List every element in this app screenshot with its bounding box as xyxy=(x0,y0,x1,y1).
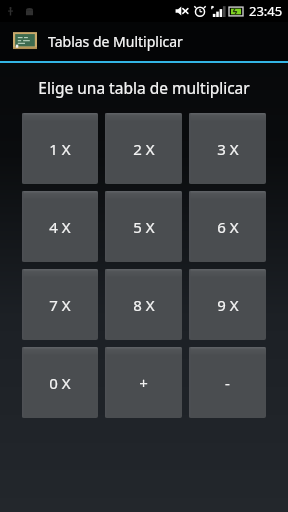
staticText: 0 X xyxy=(49,373,71,393)
staticText: 1 X xyxy=(49,139,71,159)
staticText: 8 X xyxy=(133,295,155,315)
button[interactable]: - xyxy=(189,347,266,418)
staticText: Elige una tabla de multiplicar xyxy=(0,77,288,98)
button[interactable]: 2 X xyxy=(105,113,182,184)
button[interactable]: + xyxy=(105,347,182,418)
staticText: 23:45 xyxy=(249,2,283,20)
staticText: 3 X xyxy=(217,139,239,159)
staticText: 2 X xyxy=(133,139,155,159)
staticText: Tablas de Multiplicar xyxy=(48,32,183,51)
button[interactable]: 7 X xyxy=(22,269,98,340)
staticText: 6 X xyxy=(217,217,239,237)
button[interactable]: 6 X xyxy=(189,191,266,262)
button[interactable]: 5 X xyxy=(105,191,182,262)
staticText: 7 X xyxy=(49,295,71,315)
staticText: 5 X xyxy=(133,217,155,237)
button[interactable]: 0 X xyxy=(22,347,98,418)
staticText: + xyxy=(139,373,148,393)
button[interactable]: 3 X xyxy=(189,113,266,184)
button[interactable]: 4 X xyxy=(22,191,98,262)
staticText: 9 X xyxy=(217,295,239,315)
button[interactable]: 1 X xyxy=(22,113,98,184)
button[interactable]: 8 X xyxy=(105,269,182,340)
staticText: 4 X xyxy=(49,217,71,237)
staticText: - xyxy=(225,373,230,393)
button[interactable]: 9 X xyxy=(189,269,266,340)
